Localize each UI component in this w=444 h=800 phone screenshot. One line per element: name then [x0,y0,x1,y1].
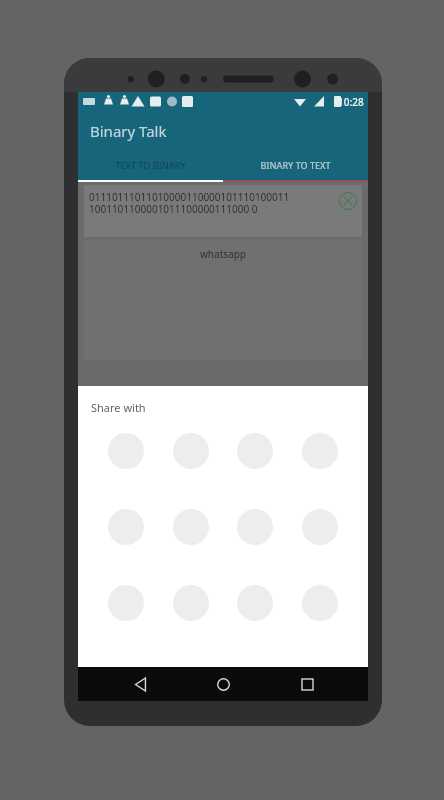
staticText: whatsapp [200,247,246,261]
button[interactable]: Recent apps [285,667,329,701]
button[interactable]: Share target [294,509,346,569]
button[interactable]: Clear text [338,191,358,211]
staticText: 01110111011010000110000101110100011 1001… [89,190,290,216]
button[interactable]: Share target [229,509,281,569]
button[interactable]: Share target [165,585,217,645]
button[interactable]: Share target [229,585,281,645]
button[interactable]: Share target [100,585,152,645]
button[interactable]: TEXT TO BINARY [78,150,223,180]
staticText: BINARY TO TEXT [260,159,331,171]
staticText: Share with [91,400,146,415]
button[interactable]: Share target [100,509,152,569]
button[interactable]: Share target [229,433,281,493]
button[interactable]: BINARY TO TEXT [223,150,368,180]
button[interactable]: Home [201,667,245,701]
staticText: Binary Talk [90,121,167,141]
button[interactable]: Share target [294,433,346,493]
staticText: TEXT TO BINARY [115,159,186,171]
button[interactable]: Share target [294,585,346,645]
button[interactable]: Back [118,667,162,701]
button[interactable]: Share target [100,433,152,493]
button[interactable]: Share target [165,433,217,493]
staticText: 10:28 [338,95,364,109]
button[interactable]: Share target [165,509,217,569]
